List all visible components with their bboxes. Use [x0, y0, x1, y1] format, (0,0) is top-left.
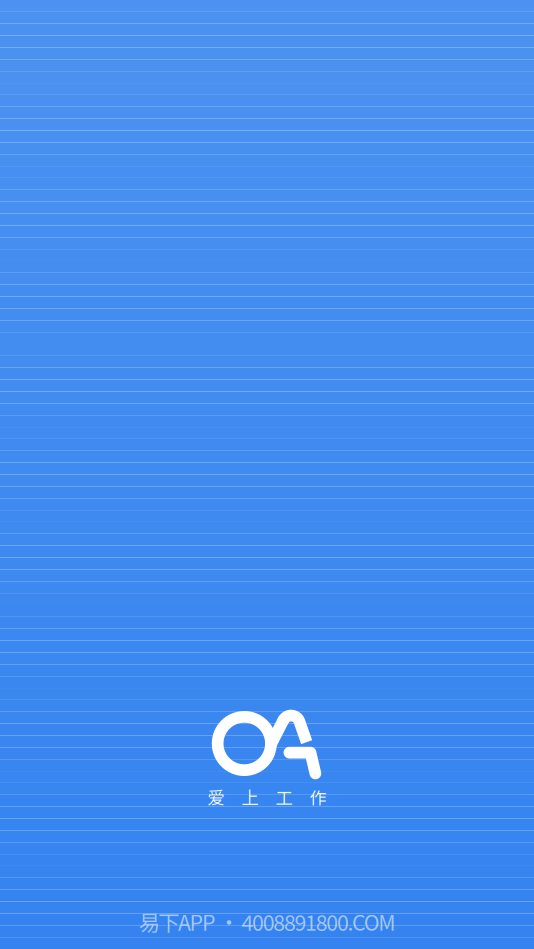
staticText: 易下APP · 4008891800.COM: [139, 906, 395, 937]
staticText: 爱上工作: [207, 784, 326, 810]
